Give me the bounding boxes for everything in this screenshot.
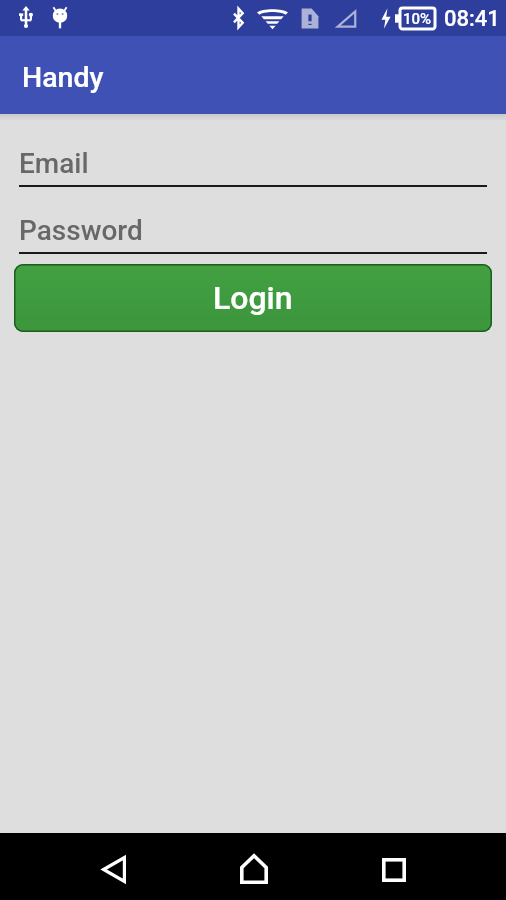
button[interactable]: Login — [14, 264, 492, 332]
staticText: Handy — [22, 61, 104, 94]
button[interactable]: Email — [19, 147, 487, 191]
button[interactable]: Password — [19, 214, 487, 258]
staticText: 08:41 — [444, 6, 500, 32]
staticText: 10% — [403, 10, 432, 28]
button[interactable]: Back — [78, 836, 150, 900]
staticText: Email — [19, 147, 89, 180]
staticText: Password — [19, 214, 143, 247]
button[interactable]: Recent apps — [358, 836, 430, 900]
staticText: Login — [213, 279, 293, 317]
button[interactable]: Home — [218, 835, 290, 900]
